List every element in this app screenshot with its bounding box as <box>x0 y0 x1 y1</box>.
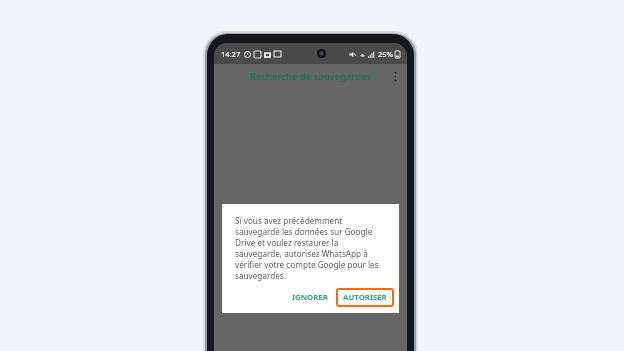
staticText: Si vous avez précédemment sauvegardé les… <box>235 215 387 281</box>
staticText: 25% <box>378 49 393 59</box>
staticText: AUTORISER <box>343 292 387 303</box>
button[interactable]: AUTORISER <box>336 288 394 307</box>
staticText: Recherche de sauvegardes <box>250 70 372 83</box>
button[interactable]: IGNORER <box>286 288 334 307</box>
button[interactable]: More options <box>387 68 403 84</box>
staticText: IGNORER <box>292 292 328 303</box>
staticText: 14:27 <box>221 49 241 59</box>
